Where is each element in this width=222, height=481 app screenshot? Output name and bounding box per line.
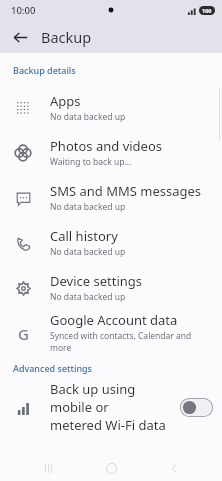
button[interactable]: G xyxy=(0,310,222,355)
button[interactable]: Call history xyxy=(0,220,222,265)
staticText: No data backed up xyxy=(50,111,126,123)
staticText: No data backed up xyxy=(50,291,126,303)
staticText: Advanced settings xyxy=(13,362,92,374)
staticText: Google Account data xyxy=(50,311,178,329)
staticText: No data backed up xyxy=(50,201,126,213)
staticText: Waiting to back up... xyxy=(50,156,132,168)
staticText: metered Wi-Fi data xyxy=(50,416,166,434)
staticText: SMS and MMS messages xyxy=(50,182,202,200)
staticText: Backup details xyxy=(13,64,76,76)
button[interactable]: Apps xyxy=(0,85,222,130)
staticText: 10:00 xyxy=(11,4,36,17)
staticText: Apps xyxy=(50,92,81,110)
button[interactable]: Device settings xyxy=(0,265,222,310)
button[interactable]: Home xyxy=(96,455,126,481)
staticText: Photos and videos xyxy=(50,137,163,155)
staticText: No data backed up xyxy=(50,246,126,258)
button[interactable]: Back xyxy=(8,25,32,49)
button[interactable]: Recent apps xyxy=(33,455,63,481)
button[interactable]: Photos and videos xyxy=(0,130,222,175)
staticText: Back up using mobile or xyxy=(50,380,176,416)
staticText: 100 xyxy=(202,7,212,14)
staticText: Synced with contacts, Calendar and more xyxy=(50,330,210,354)
staticText: Backup xyxy=(41,27,92,47)
button[interactable]: SMS and MMS messages xyxy=(0,175,222,220)
button[interactable]: Back up using mobile or xyxy=(0,380,222,435)
staticText: Device settings xyxy=(50,272,143,290)
staticText: Call history xyxy=(50,227,118,245)
staticText: G xyxy=(18,324,29,342)
button[interactable]: Back up using mobile or metered Wi-Fi da… xyxy=(180,398,213,417)
